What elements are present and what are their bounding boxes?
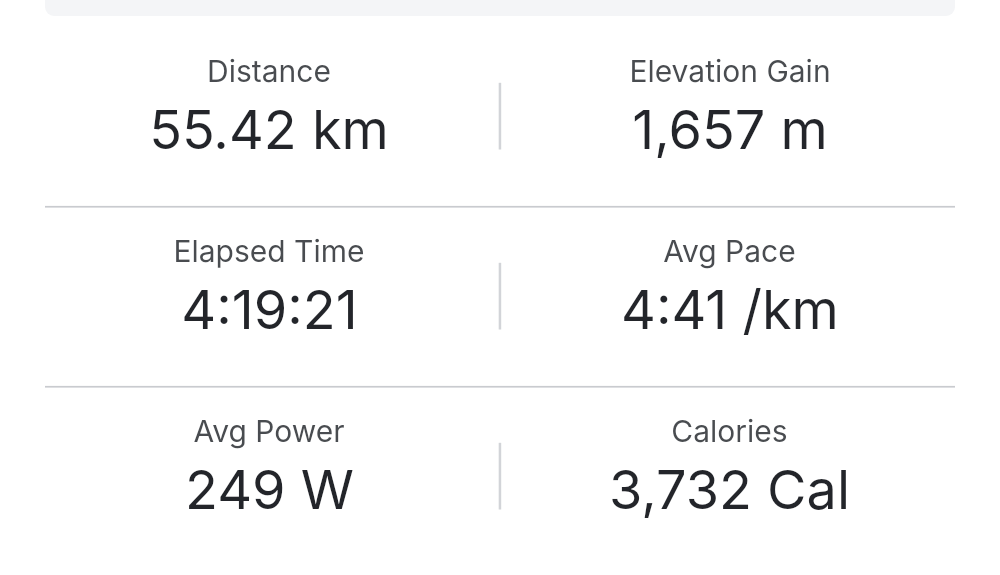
button[interactable]: Elapsed Time [0,206,500,386]
button[interactable]: Calories [500,386,1000,566]
staticText: 1,657 m [632,97,828,162]
staticText: 3,732 Cal [609,457,850,522]
staticText: Elapsed Time [173,233,365,269]
button[interactable]: Distance [0,26,500,206]
button[interactable]: Avg Power [0,386,500,566]
staticText: 4:19:21 [181,277,358,342]
staticText: 4:41 /km [621,277,839,342]
staticText: Calories [671,413,788,449]
staticText: Elevation Gain [629,53,831,89]
staticText: 249 W [185,457,354,522]
staticText: Avg Power [193,413,345,449]
staticText: 55.42 km [149,97,389,162]
button[interactable]: Avg Pace [500,206,1000,386]
staticText: Distance [207,53,331,89]
button[interactable]: Elevation Gain [500,26,1000,206]
staticText: Avg Pace [663,233,796,269]
